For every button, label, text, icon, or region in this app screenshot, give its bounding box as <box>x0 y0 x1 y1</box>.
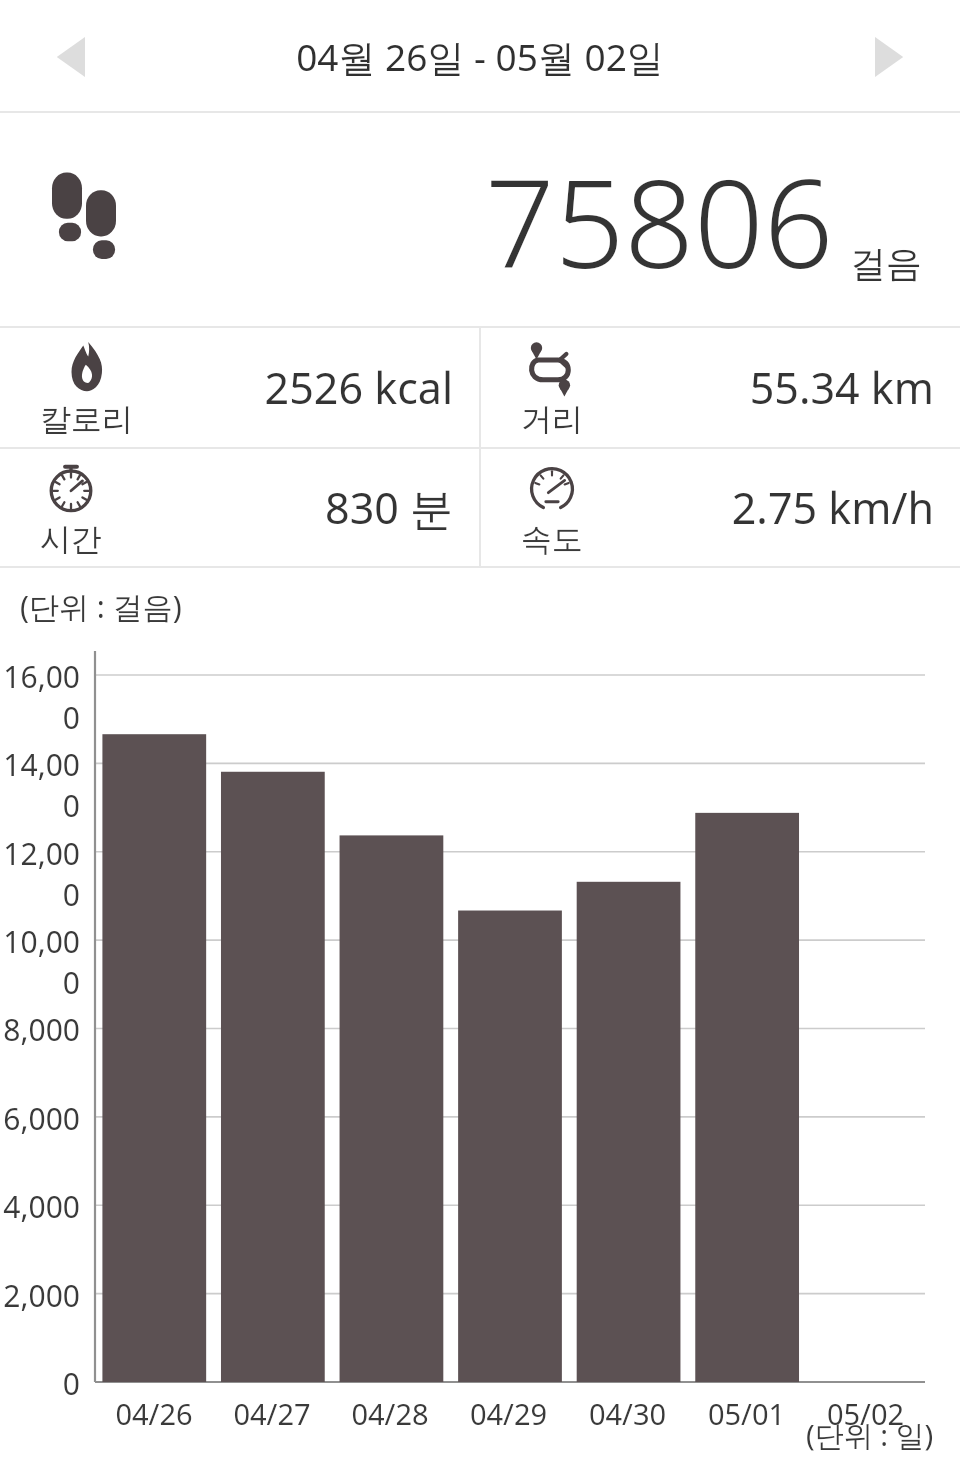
staticText: 0 <box>0 1363 80 1404</box>
staticText: 04/26 <box>95 1394 213 1433</box>
button[interactable]: 칼로리 <box>0 328 479 447</box>
staticText: 속도 <box>521 520 583 559</box>
staticText: 04/29 <box>449 1394 568 1433</box>
staticText: 04/30 <box>568 1394 687 1433</box>
staticText: 걸음 <box>850 241 922 286</box>
button[interactable]: 시간 <box>0 449 479 566</box>
staticText: 04/28 <box>331 1394 449 1433</box>
staticText: 14,000 <box>0 744 80 826</box>
button[interactable]: Previous week <box>22 9 118 105</box>
staticText: 시간 <box>40 520 102 559</box>
staticText: 75806 <box>485 138 834 304</box>
staticText: 10,000 <box>0 921 80 1003</box>
staticText: 4,000 <box>0 1186 80 1227</box>
staticText: 2,000 <box>0 1275 80 1316</box>
staticText: 2526 kcal <box>160 358 453 417</box>
staticText: 04/27 <box>213 1394 331 1433</box>
staticText: 830 분 <box>160 478 453 537</box>
staticText: 16,000 <box>0 656 80 738</box>
staticText: 04월 26일 - 05월 02일 <box>296 31 664 82</box>
staticText: 05/02 <box>806 1394 925 1433</box>
staticText: 05/01 <box>687 1394 806 1433</box>
staticText: 12,000 <box>0 833 80 915</box>
staticText: (단위 : 일) <box>806 1415 934 1455</box>
staticText: 55.34 km <box>641 358 934 417</box>
button[interactable]: Next week <box>842 9 938 105</box>
button[interactable]: 거리 <box>481 328 960 447</box>
button[interactable]: 75806 <box>0 113 960 328</box>
button[interactable]: 속도 <box>481 449 960 566</box>
staticText: (단위 : 걸음) <box>20 586 182 627</box>
staticText: 6,000 <box>0 1098 80 1139</box>
staticText: 거리 <box>521 400 583 439</box>
staticText: 칼로리 <box>40 400 133 439</box>
staticText: 2.75 km/h <box>641 478 934 537</box>
staticText: 8,000 <box>0 1009 80 1050</box>
